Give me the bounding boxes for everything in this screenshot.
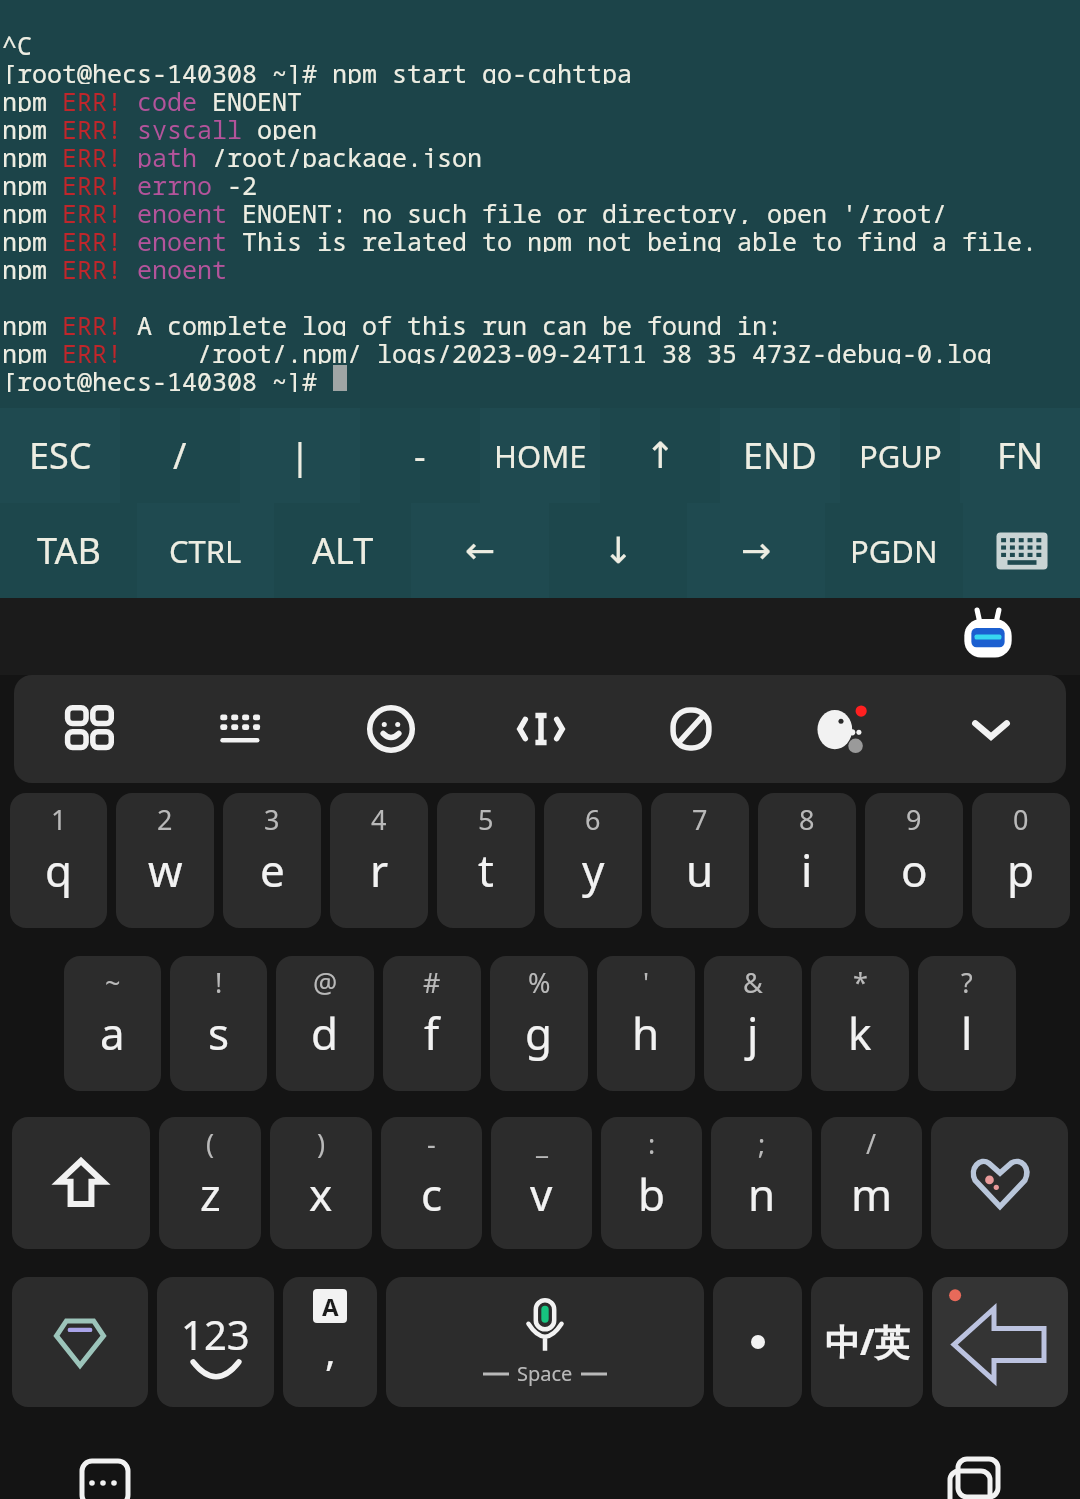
button[interactable]: ( [159,1117,261,1249]
staticText: ↑ [645,435,676,477]
button[interactable]: 6 [544,793,642,928]
staticText: y [582,840,605,900]
button[interactable]: Shift [12,1117,150,1249]
button[interactable]: ' [597,956,695,1091]
button[interactable]: % [490,956,588,1091]
staticText: 6 [585,801,601,838]
button[interactable]: Space [386,1277,704,1407]
staticText: 123 [181,1307,250,1361]
button[interactable]: Switch window [948,1453,1002,1499]
button[interactable]: Apps [14,675,165,783]
staticText: ^C [2,28,33,56]
staticText: 5 [478,801,494,838]
button[interactable]: 2 [116,793,214,928]
staticText: o [901,840,928,900]
button[interactable]: | [240,408,360,503]
button[interactable]: : [601,1117,702,1249]
button[interactable]: 3 [223,793,321,928]
button[interactable]: - [360,408,480,503]
button[interactable]: PGUP [840,408,960,503]
staticText: npm ERR! path /root/package.json [2,140,483,168]
staticText: x [309,1164,333,1224]
staticText: b [638,1164,666,1224]
button[interactable]: ↓ [549,503,687,598]
staticText: npm ERR! enoent ENOENT: no such file or … [2,196,1080,224]
staticText: PGUP [859,435,942,477]
button[interactable]: ; [711,1117,812,1249]
staticText: ? [961,964,973,1001]
button[interactable]: Stickers [931,1117,1068,1249]
button[interactable]: A [283,1277,377,1407]
button[interactable]: END [720,408,840,503]
button[interactable]: CTRL [137,503,274,598]
button[interactable]: Numbers and symbols [157,1277,274,1407]
button[interactable]: TAB [0,503,137,598]
staticText: / [866,1125,877,1162]
button[interactable]: Assistant bot [956,605,1020,669]
button[interactable]: 1 [10,793,107,928]
button[interactable]: # [383,956,481,1091]
button[interactable]: & [704,956,802,1091]
button[interactable]: 中/英 [811,1277,923,1407]
button[interactable]: ESC [0,408,120,503]
staticText: 7 [692,801,708,838]
button[interactable]: * [811,956,909,1091]
button[interactable]: ALT [274,503,411,598]
button[interactable]: ~ [64,956,161,1091]
other: Theme [12,1277,148,1407]
button[interactable]: Text edit [466,675,616,783]
button[interactable]: Enter [932,1277,1068,1407]
button[interactable]: 4 [330,793,428,928]
staticText: 0 [1013,801,1029,838]
other: Period [713,1277,802,1407]
staticText: [root@hecs-140308 ~]# npm start go-cqhtt… [2,56,633,84]
staticText: 1 [51,801,67,838]
button[interactable]: - [381,1117,482,1249]
staticText: 9 [906,801,922,838]
staticText: ! [215,964,223,1001]
button[interactable]: Ads [766,675,916,783]
button[interactable]: 0 [972,793,1070,928]
staticText: | [290,431,310,480]
staticText: _ [536,1125,548,1162]
button[interactable]: 5 [437,793,535,928]
button[interactable]: Keyboard layout [165,675,316,783]
staticText: l [961,1003,973,1063]
staticText: 3 [264,801,280,838]
button[interactable]: Collapse [916,675,1066,783]
staticText: & [743,964,763,1001]
staticText: ~ [105,964,121,1001]
staticText: q [45,840,73,900]
button[interactable]: ↑ [600,408,720,503]
staticText: a [100,1003,125,1063]
button[interactable]: Theme [12,1277,148,1407]
button[interactable]: Emoji [316,675,466,783]
button[interactable]: ) [270,1117,372,1249]
staticText: p [1007,840,1035,900]
button[interactable]: / [821,1117,922,1249]
button[interactable]: Hide keyboard [963,503,1080,598]
button[interactable]: 9 [865,793,963,928]
button[interactable]: ! [170,956,267,1091]
other: Numbers and symbols [157,1277,274,1407]
staticText: s [208,1003,230,1063]
button[interactable]: Period [713,1277,802,1407]
button[interactable]: Recents [78,1453,132,1499]
button[interactable]: @ [276,956,374,1091]
button[interactable]: 8 [758,793,856,928]
button[interactable]: HOME [480,408,600,503]
staticText: npm ERR! A complete log of this run can … [2,308,783,336]
button[interactable]: ? [918,956,1016,1091]
staticText: m [851,1164,893,1224]
button[interactable]: ← [411,503,549,598]
staticText: ← [465,530,496,572]
other: Stickers [931,1117,1068,1249]
button[interactable]: 7 [651,793,749,928]
button[interactable]: FN [960,408,1080,503]
staticText: % [528,964,551,1001]
button[interactable]: PGDN [825,503,963,598]
button[interactable]: _ [491,1117,592,1249]
button[interactable]: / [120,408,240,503]
button[interactable]: Clipboard [616,675,766,783]
button[interactable]: → [687,503,825,598]
